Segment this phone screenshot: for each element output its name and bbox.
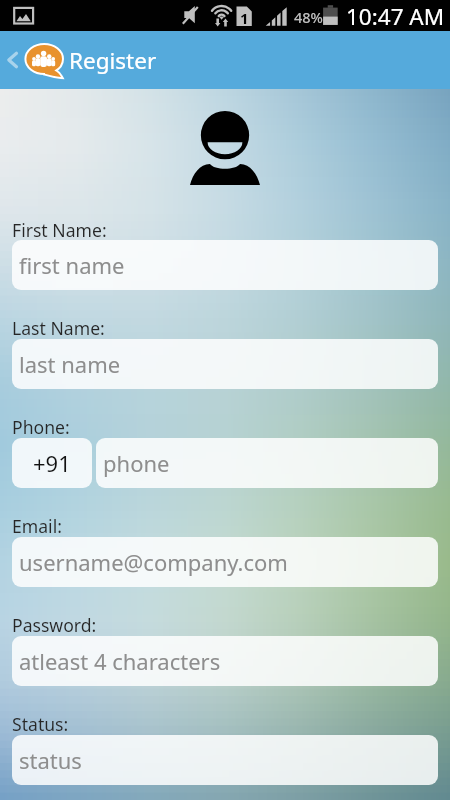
button[interactable]: +91 xyxy=(12,438,92,488)
staticText: Status: xyxy=(12,712,69,736)
button[interactable]: Back xyxy=(0,31,24,89)
staticText: last name xyxy=(19,349,121,379)
button[interactable]: last name xyxy=(12,339,438,389)
staticText: Last Name: xyxy=(12,316,105,340)
staticText: Email: xyxy=(12,514,62,538)
button[interactable]: atleast 4 characters xyxy=(12,636,438,686)
staticText: atleast 4 characters xyxy=(19,646,221,676)
button[interactable]: first name xyxy=(12,240,438,290)
staticText: username@company.com xyxy=(19,547,288,577)
staticText: 48% xyxy=(294,7,323,27)
staticText: Phone: xyxy=(12,415,70,439)
staticText: first name xyxy=(19,250,125,280)
staticText: 10:47 AM xyxy=(346,1,445,32)
staticText: First Name: xyxy=(12,218,107,242)
button[interactable]: phone xyxy=(96,438,438,488)
staticText: +91 xyxy=(33,448,71,478)
staticText: 1 xyxy=(240,8,249,28)
staticText: phone xyxy=(103,448,170,478)
staticText: Register xyxy=(69,45,157,76)
staticText: status xyxy=(19,745,82,775)
staticText: Password: xyxy=(12,613,97,637)
button[interactable]: username@company.com xyxy=(12,537,438,587)
button[interactable]: status xyxy=(12,735,438,785)
